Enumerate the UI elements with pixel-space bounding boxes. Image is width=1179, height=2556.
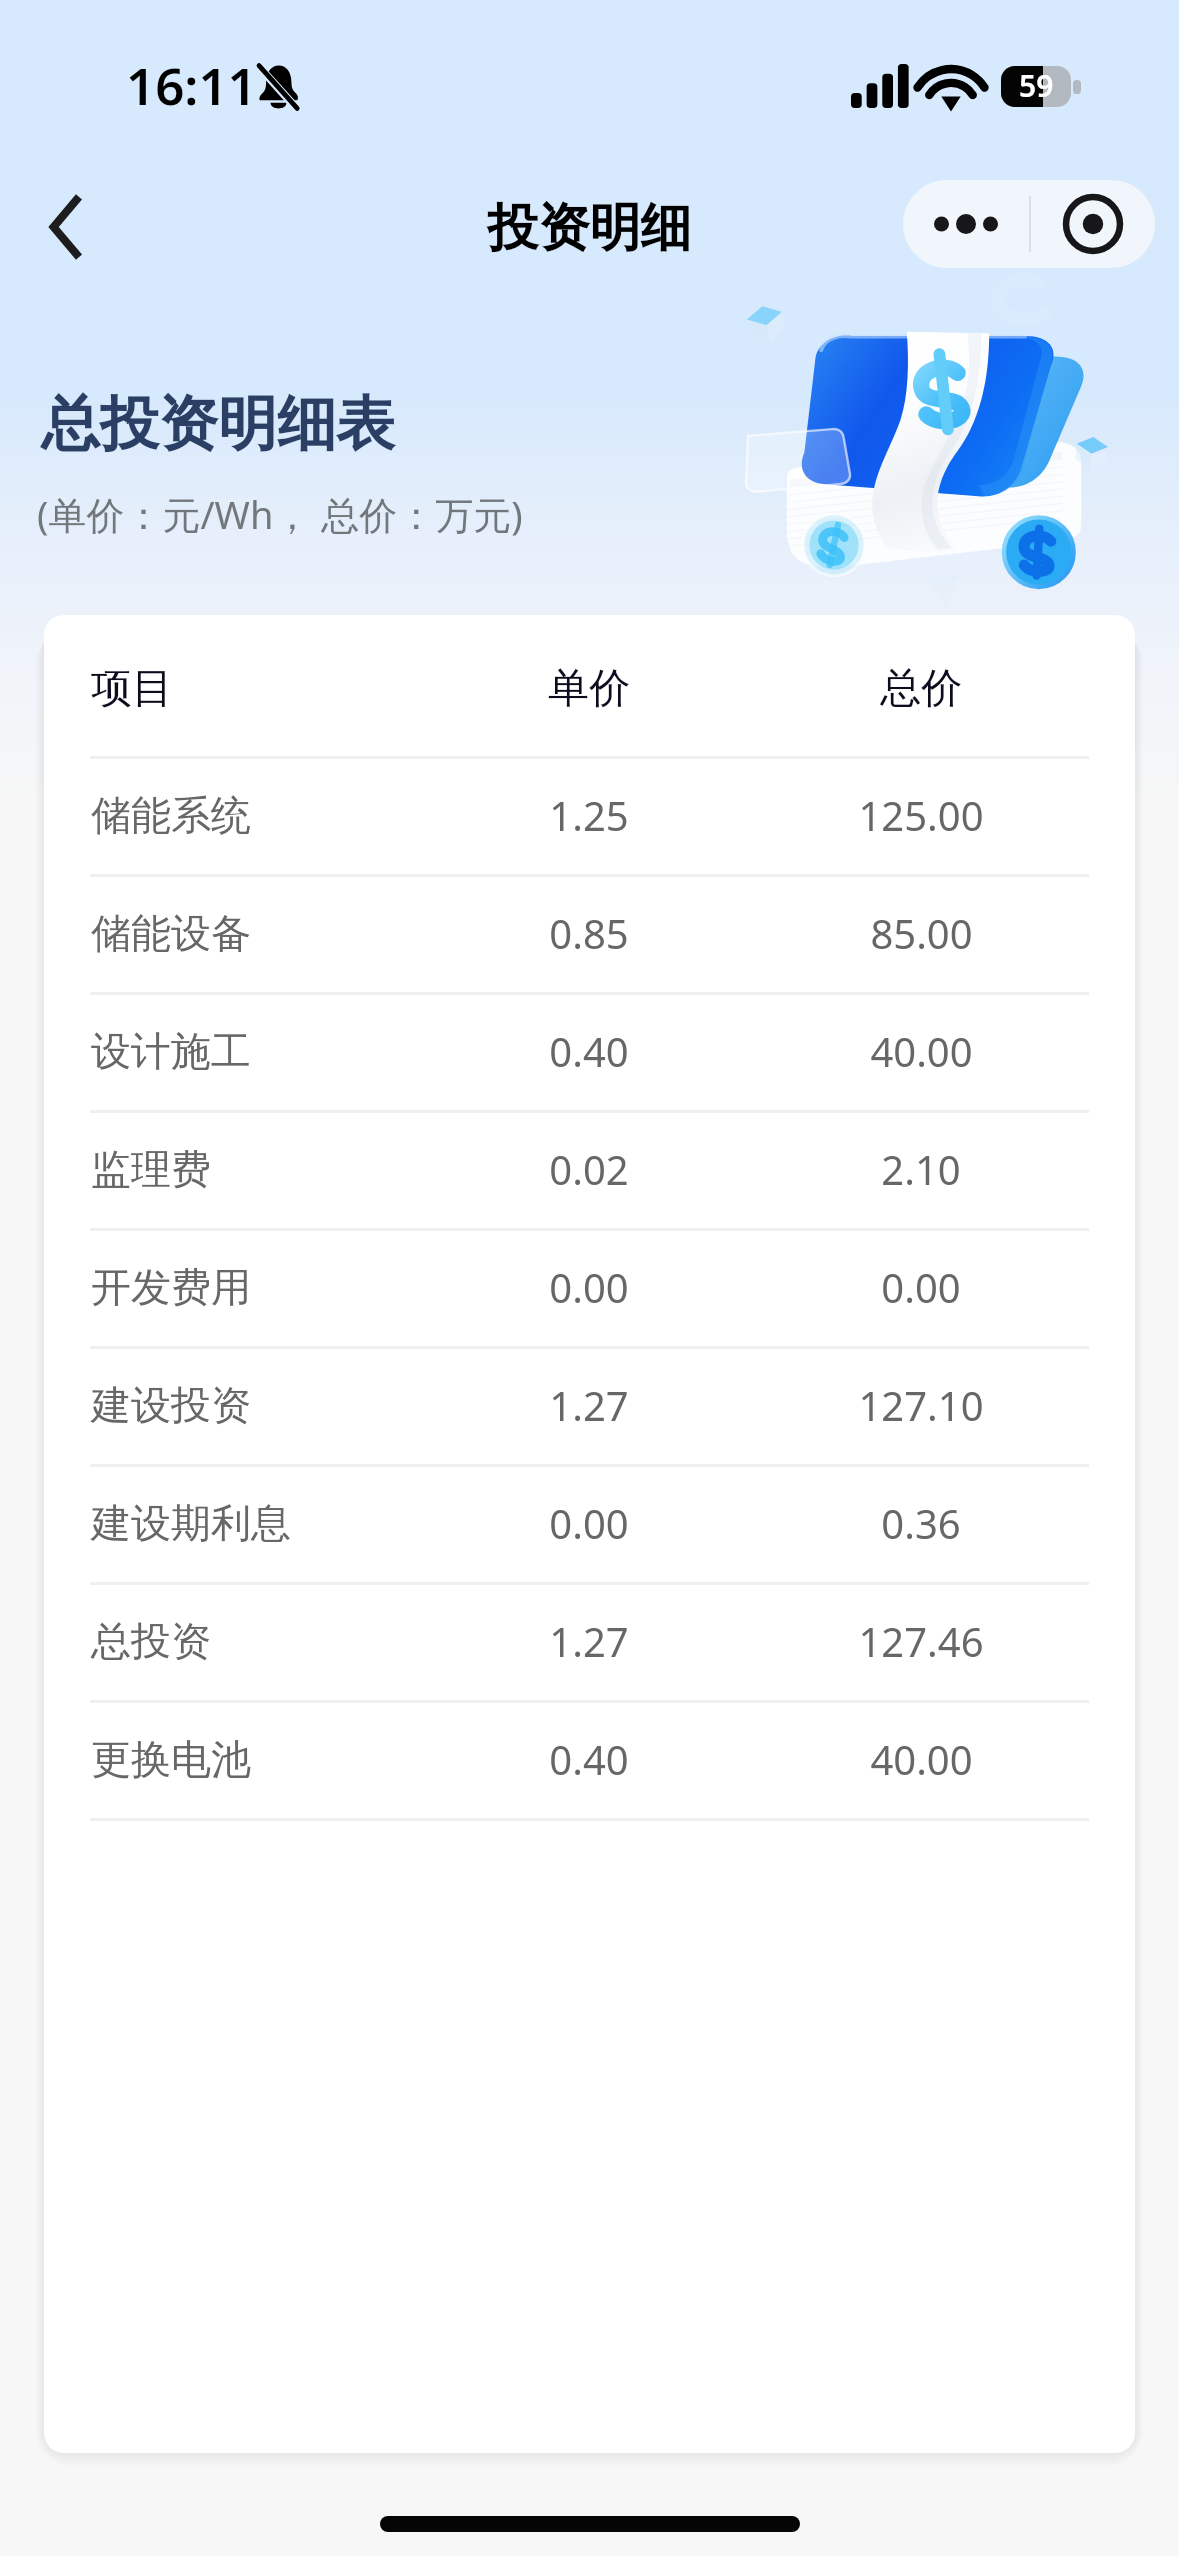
staticText: 总投资 — [91, 1616, 211, 1666]
staticText: 127.10 — [858, 1378, 984, 1432]
button[interactable]: 储能系统 — [44, 759, 1135, 874]
button[interactable]: 建设投资 — [44, 1349, 1135, 1464]
staticText: 1.25 — [549, 788, 629, 842]
button[interactable]: 总投资 — [44, 1585, 1135, 1700]
staticText: (单价：元/Wh， 总价：万元) — [37, 488, 523, 540]
staticText: 125.00 — [858, 788, 984, 842]
button[interactable]: 开发费用 — [44, 1231, 1135, 1346]
staticText: 0.36 — [881, 1496, 961, 1550]
staticText: 59 — [1019, 66, 1054, 106]
staticText: 监理费 — [91, 1144, 211, 1194]
button[interactable]: 项目 — [44, 615, 1135, 756]
staticText: 85.00 — [870, 906, 973, 960]
staticText: 总投资明细表 — [41, 387, 395, 461]
staticText: 储能设备 — [91, 908, 251, 958]
staticText: 储能系统 — [91, 790, 251, 840]
staticText: 投资明细 — [0, 196, 1179, 260]
staticText: 127.46 — [858, 1614, 984, 1668]
staticText: 0.85 — [549, 906, 629, 960]
staticText: 总价 — [880, 663, 962, 715]
staticText: 1.27 — [549, 1614, 629, 1668]
staticText: 0.00 — [881, 1260, 961, 1314]
button[interactable]: Close mini program — [1031, 180, 1155, 268]
button[interactable]: 储能设备 — [44, 877, 1135, 992]
button[interactable]: 设计施工 — [44, 995, 1135, 1110]
staticText: 16:11 — [126, 50, 257, 119]
staticText: 1.27 — [549, 1378, 629, 1432]
staticText: 更换电池 — [91, 1734, 251, 1784]
staticText: 设计施工 — [91, 1026, 251, 1076]
staticText: 建设投资 — [91, 1380, 251, 1430]
staticText: 项目 — [91, 663, 173, 715]
button[interactable]: 更换电池 — [44, 1703, 1135, 1818]
staticText: 0.40 — [549, 1732, 629, 1786]
staticText: 单价 — [548, 663, 630, 715]
button[interactable]: 建设期利息 — [44, 1467, 1135, 1582]
button[interactable]: 监理费 — [44, 1113, 1135, 1228]
button[interactable]: More options — [903, 180, 1029, 268]
button[interactable]: Back — [15, 177, 115, 277]
staticText: 40.00 — [870, 1024, 973, 1078]
staticText: 开发费用 — [91, 1262, 251, 1312]
staticText: 2.10 — [881, 1142, 961, 1196]
staticText: 0.00 — [549, 1260, 629, 1314]
staticText: 建设期利息 — [91, 1498, 291, 1548]
staticText: 40.00 — [870, 1732, 973, 1786]
staticText: 0.02 — [549, 1142, 629, 1196]
staticText: 0.40 — [549, 1024, 629, 1078]
staticText: 0.00 — [549, 1496, 629, 1550]
